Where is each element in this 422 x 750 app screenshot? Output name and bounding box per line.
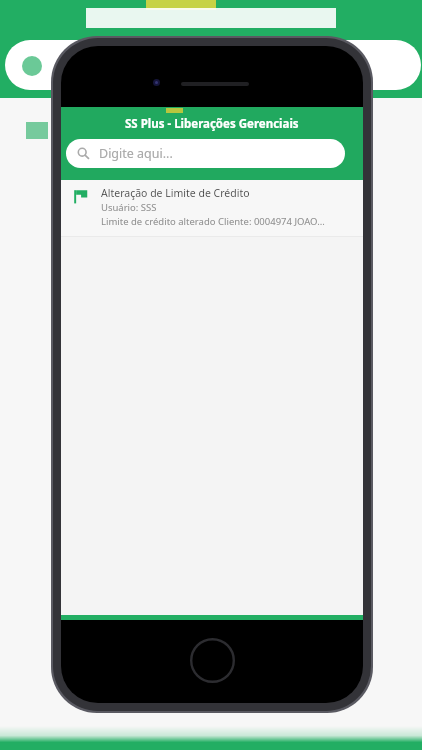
staticText: Digite aqui... [99, 145, 173, 162]
staticText: SS Plus - Liberações Gerenciais [125, 116, 299, 132]
staticText: Usuário: SSS [101, 201, 157, 214]
button[interactable]: Digite aqui... [66, 139, 345, 168]
staticText: Alteração de Limite de Crédito [101, 186, 250, 200]
other: Flag status [73, 189, 88, 204]
button[interactable]: Flag status [61, 180, 363, 236]
staticText: Limite de crédito alterado Cliente: 0004… [101, 215, 325, 228]
